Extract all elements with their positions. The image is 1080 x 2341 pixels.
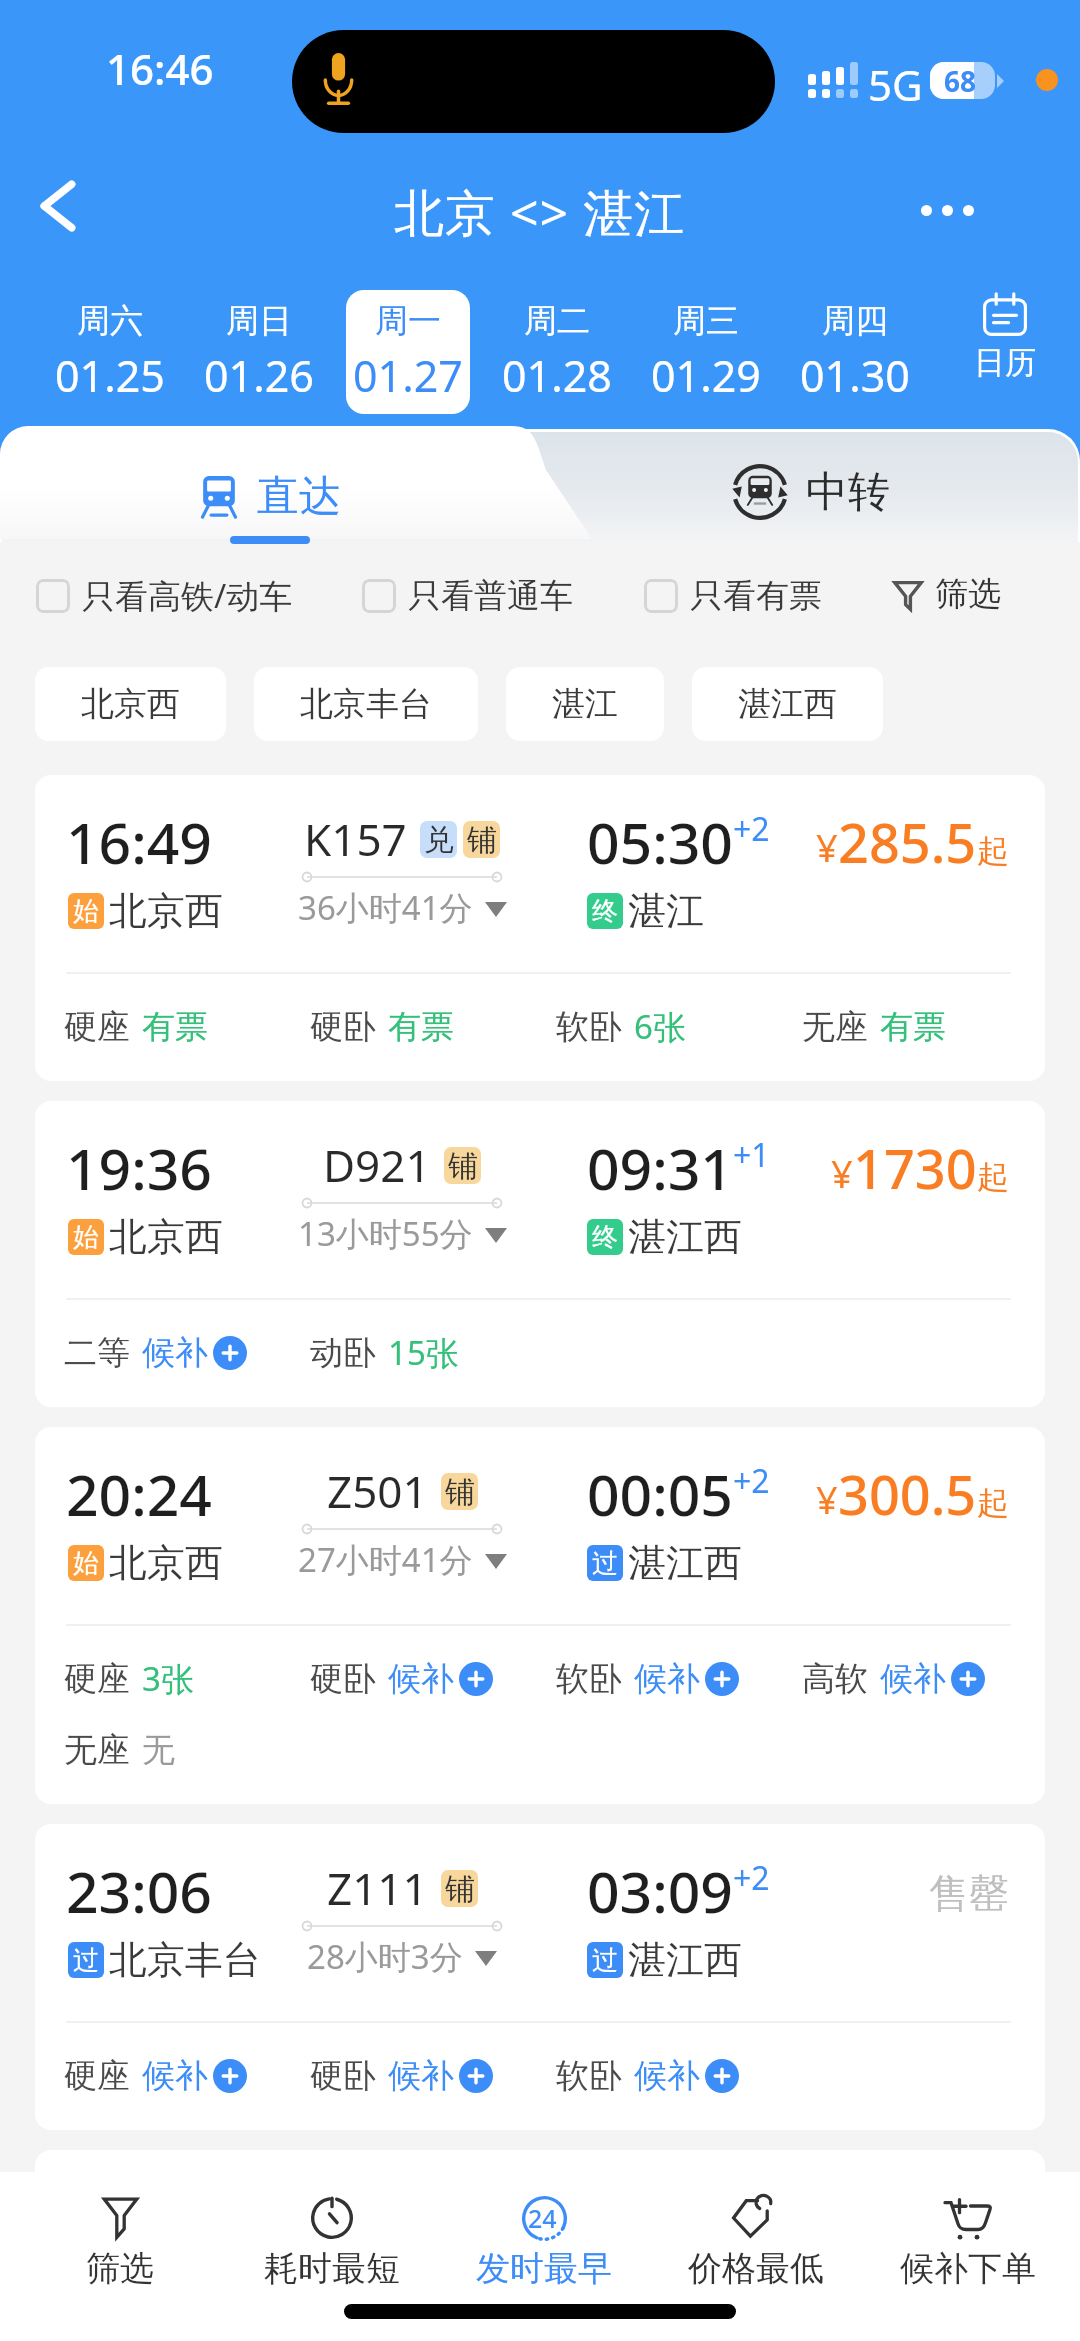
- staticText: 候补下单: [900, 2247, 1036, 2290]
- staticText: 28小时3分: [307, 1934, 463, 1979]
- staticText: 湛江西: [628, 1539, 742, 1587]
- button[interactable]: 20:24: [35, 1427, 1045, 1804]
- staticText: 1730: [853, 1131, 977, 1205]
- staticText: D921: [323, 1135, 431, 1195]
- staticText: 300.5: [838, 1457, 977, 1531]
- staticText: 北京西: [109, 1213, 223, 1261]
- button[interactable]: 只看普通车: [362, 575, 573, 617]
- staticText: 北京 <> 湛江: [394, 178, 686, 246]
- staticText: 5G: [868, 56, 923, 113]
- staticText: 终: [592, 895, 618, 928]
- staticText: 01.25: [55, 346, 165, 405]
- staticText: 湛江西: [628, 1936, 742, 1984]
- staticText: 硬卧: [310, 1658, 376, 1700]
- staticText: 过: [592, 1944, 618, 1977]
- staticText: 硬卧: [310, 1006, 376, 1048]
- staticText: 候补: [634, 1658, 700, 1700]
- staticText: 只看普通车: [408, 575, 573, 617]
- button[interactable]: 周二: [482, 272, 631, 432]
- staticText: 北京西: [81, 683, 180, 725]
- button[interactable]: 耗时最短: [226, 2194, 438, 2290]
- staticText: 硬座: [64, 1658, 130, 1700]
- button[interactable]: 周日: [184, 272, 333, 432]
- staticText: 09:31: [587, 1129, 733, 1207]
- staticText: 20:24: [66, 1455, 212, 1533]
- staticText: K157: [304, 809, 407, 869]
- staticText: 有票: [880, 1006, 946, 1048]
- staticText: 01.28: [502, 346, 612, 405]
- button[interactable]: Back: [18, 166, 98, 246]
- button[interactable]: 筛选: [893, 573, 1001, 615]
- staticText: 起: [977, 1157, 1009, 1197]
- staticText: ¥: [816, 821, 838, 873]
- staticText: ¥: [831, 1147, 853, 1199]
- button[interactable]: 直达: [201, 470, 341, 523]
- staticText: 铺: [467, 821, 497, 858]
- staticText: 00:05: [587, 1455, 733, 1533]
- staticText: 直达: [257, 470, 341, 523]
- staticText: 软卧: [556, 1006, 622, 1048]
- staticText: 终: [592, 1221, 618, 1254]
- staticText: Z501: [327, 1461, 428, 1521]
- staticText: 有票: [388, 1006, 454, 1048]
- staticText: 03:09: [587, 1852, 733, 1930]
- staticText: 始: [73, 895, 99, 928]
- staticText: 05:30: [587, 803, 733, 881]
- staticText: 北京西: [109, 1539, 223, 1587]
- button[interactable]: 筛选: [14, 2194, 226, 2290]
- staticText: 始: [73, 1547, 99, 1580]
- staticText: 01.30: [800, 346, 910, 405]
- staticText: 周日: [226, 300, 292, 342]
- button[interactable]: 北京西: [35, 667, 226, 741]
- staticText: 68: [944, 62, 977, 99]
- button[interactable]: 只看高铁/动车: [36, 573, 293, 618]
- staticText: 候补: [142, 2055, 208, 2097]
- staticText: 始: [73, 1221, 99, 1254]
- staticText: 只看高铁/动车: [82, 573, 293, 618]
- staticText: 发时最早: [476, 2247, 612, 2290]
- button[interactable]: 候补下单: [862, 2194, 1074, 2290]
- staticText: 23:06: [66, 1852, 212, 1930]
- staticText: 湛江: [552, 683, 618, 725]
- staticText: 01.26: [204, 346, 314, 405]
- button[interactable]: 19:36: [35, 1101, 1045, 1407]
- button[interactable]: 16:49: [35, 775, 1045, 1081]
- button[interactable]: 周三: [631, 272, 780, 432]
- staticText: 硬座: [64, 2055, 130, 2097]
- staticText: 01.27: [353, 346, 463, 405]
- button[interactable]: 湛江: [506, 667, 664, 741]
- button[interactable]: More options: [903, 166, 991, 254]
- staticText: 候补: [142, 1332, 208, 1374]
- staticText: +2: [733, 1856, 770, 1900]
- staticText: 只看有票: [690, 575, 822, 617]
- button[interactable]: 湛江西: [692, 667, 883, 741]
- button[interactable]: 价格最低: [650, 2194, 862, 2290]
- staticText: 周三: [673, 300, 739, 342]
- staticText: 中转: [806, 466, 890, 519]
- staticText: 兑: [424, 821, 454, 858]
- staticText: 铺: [448, 1147, 478, 1184]
- staticText: 16:49: [66, 803, 212, 881]
- button[interactable]: 周六: [35, 272, 184, 432]
- staticText: 候补: [634, 2055, 700, 2097]
- staticText: 01.29: [651, 346, 761, 405]
- button[interactable]: 周一: [333, 272, 482, 432]
- staticText: 24: [528, 2201, 557, 2235]
- button[interactable]: 23:06: [35, 1824, 1045, 2130]
- staticText: +1: [733, 1133, 770, 1177]
- staticText: 13小时55分: [298, 1211, 473, 1256]
- staticText: 候补: [880, 1658, 946, 1700]
- staticText: 19:36: [66, 1129, 212, 1207]
- button[interactable]: 只看有票: [644, 575, 822, 617]
- button[interactable]: Calendar: [929, 272, 1080, 432]
- staticText: 北京西: [109, 887, 223, 935]
- staticText: 候补: [388, 2055, 454, 2097]
- button[interactable]: 北京丰台: [254, 667, 478, 741]
- button[interactable]: 周四: [780, 272, 929, 432]
- staticText: 15张: [388, 1330, 459, 1375]
- button[interactable]: 24: [438, 2194, 650, 2290]
- staticText: +2: [733, 1459, 770, 1503]
- button[interactable]: 中转: [732, 464, 890, 520]
- staticText: 动卧: [310, 1332, 376, 1374]
- staticText: 无座: [802, 1006, 868, 1048]
